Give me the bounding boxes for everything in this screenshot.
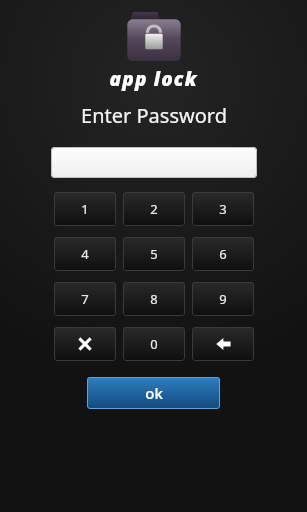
button[interactable]: 0 [123, 327, 185, 361]
button[interactable]: 6 [192, 237, 254, 271]
staticText: 6 [219, 245, 227, 263]
staticText: 2 [150, 200, 158, 218]
staticText: ok [145, 383, 163, 403]
staticText: 8 [150, 290, 158, 308]
button[interactable]: 9 [192, 282, 254, 316]
button[interactable]: Backspace [192, 327, 254, 361]
button[interactable] [51, 147, 257, 178]
staticText: 7 [81, 290, 89, 308]
button[interactable]: 1 [54, 192, 116, 226]
button[interactable]: 8 [123, 282, 185, 316]
button[interactable]: Clear [54, 327, 116, 361]
staticText: 9 [219, 290, 227, 308]
staticText: app lock [109, 66, 198, 92]
staticText: 1 [81, 200, 89, 218]
staticText: 3 [219, 200, 227, 218]
staticText: 0 [150, 335, 158, 353]
button[interactable]: 4 [54, 237, 116, 271]
staticText: 5 [150, 245, 158, 263]
staticText: Enter Password [81, 102, 227, 129]
button[interactable]: 3 [192, 192, 254, 226]
button[interactable]: 7 [54, 282, 116, 316]
button[interactable]: ok [87, 377, 220, 409]
button[interactable]: 2 [123, 192, 185, 226]
staticText: 4 [81, 245, 89, 263]
button[interactable]: 5 [123, 237, 185, 271]
